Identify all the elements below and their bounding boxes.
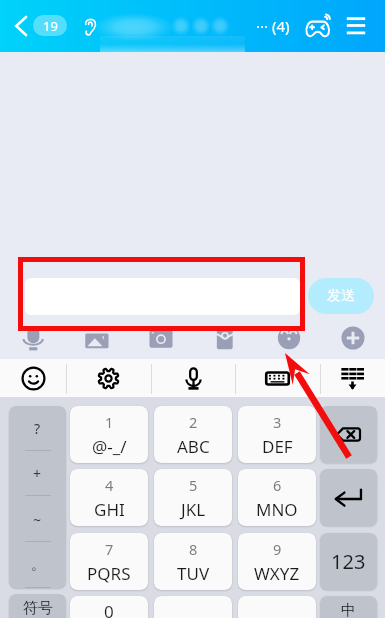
button[interactable]: 5	[154, 469, 232, 526]
staticText: 2	[189, 412, 198, 432]
staticText: JKL	[181, 498, 206, 521]
button[interactable]: Voice message	[0, 323, 65, 352]
button[interactable]: Video	[193, 323, 257, 352]
staticText: ?	[34, 419, 41, 438]
staticText: GHI	[94, 498, 125, 521]
button[interactable]: 8	[154, 533, 232, 590]
staticText: 中	[341, 601, 356, 618]
button[interactable]: ?	[9, 406, 66, 451]
button[interactable]: Photos	[65, 323, 129, 352]
button[interactable]: Menu	[344, 14, 368, 38]
staticText: MNO	[256, 498, 298, 521]
button[interactable]: Emoji	[0, 359, 66, 397]
button[interactable]: 发送	[308, 278, 374, 314]
staticText: 8	[189, 539, 198, 559]
button[interactable]: Hide keyboard	[320, 359, 385, 397]
staticText: +	[33, 464, 42, 483]
button[interactable]: 2	[154, 406, 232, 463]
button[interactable]: 123	[320, 533, 377, 590]
staticText: 4	[105, 475, 114, 495]
button[interactable]: Keyboard	[235, 359, 320, 397]
button[interactable]: 0	[70, 596, 148, 618]
staticText: 5	[189, 475, 198, 495]
button[interactable]: Listen	[81, 16, 99, 36]
staticText: 6	[273, 475, 282, 495]
button[interactable]	[154, 596, 232, 618]
button[interactable]: Enter	[320, 469, 377, 526]
staticText: 符号	[23, 599, 53, 618]
staticText: 9	[273, 539, 282, 559]
button[interactable]: 符号	[9, 594, 66, 618]
staticText: TUV	[177, 562, 210, 585]
staticText: ··· (4)	[256, 16, 290, 36]
staticText: 0	[104, 600, 114, 618]
button[interactable]: 中	[320, 596, 377, 618]
button[interactable]: 。	[9, 542, 66, 588]
button[interactable]: 1	[70, 406, 148, 463]
button[interactable]: +	[9, 451, 66, 496]
staticText: ~	[33, 510, 42, 529]
button[interactable]: Input settings	[66, 359, 151, 397]
button[interactable]: 9	[238, 533, 316, 590]
button[interactable]: 3	[238, 406, 316, 463]
staticText: DEF	[262, 435, 293, 458]
staticText: 3	[273, 412, 282, 432]
staticText: @-_/	[92, 435, 127, 458]
button[interactable]: ··· (4)	[247, 12, 299, 40]
button[interactable]: 6	[238, 469, 316, 526]
button[interactable]: Emoji	[257, 323, 321, 352]
staticText: 19	[43, 17, 58, 35]
staticText: WXYZ	[254, 562, 300, 585]
staticText: PQRS	[87, 562, 131, 585]
staticText: 1	[105, 412, 114, 432]
button[interactable]	[238, 596, 316, 618]
button[interactable]: Back	[8, 12, 34, 40]
button[interactable]: 4	[70, 469, 148, 526]
button[interactable]: More	[321, 323, 385, 352]
staticText: 123	[331, 548, 366, 575]
button[interactable]: 19	[33, 15, 67, 36]
staticText: 。	[31, 556, 45, 574]
button[interactable]: ~	[9, 496, 66, 542]
staticText: ABC	[177, 435, 210, 458]
button[interactable]: Camera	[129, 323, 193, 352]
staticText: 7	[105, 539, 114, 559]
staticText: 发送	[327, 287, 355, 305]
button[interactable]: Voice input	[151, 359, 235, 397]
button[interactable]: Games	[304, 13, 332, 39]
button[interactable]: Backspace	[320, 406, 377, 463]
button[interactable]: 7	[70, 533, 148, 590]
